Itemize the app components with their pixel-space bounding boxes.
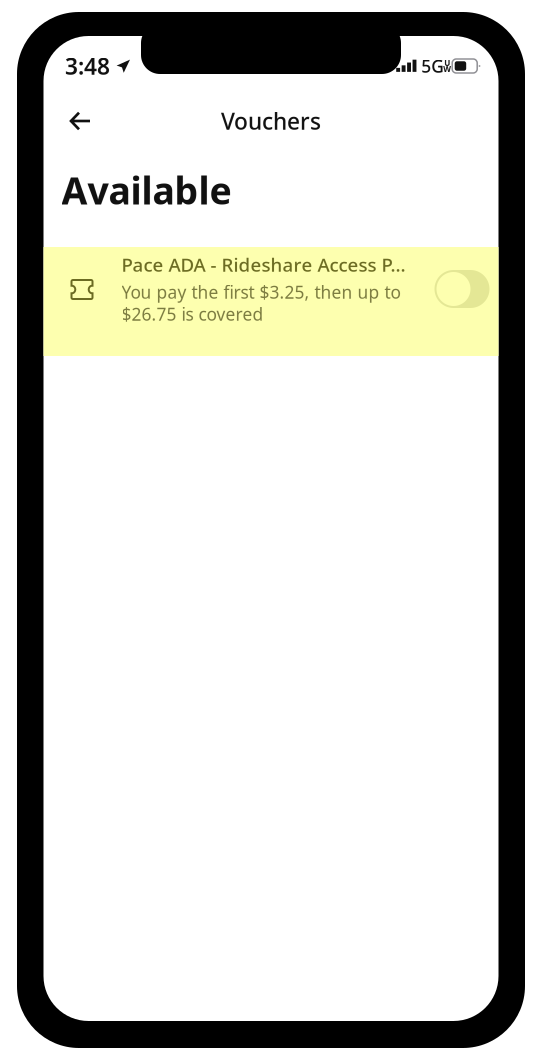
staticText: Pace ADA - Rideshare Access P… bbox=[121, 252, 405, 277]
staticText: 5G bbox=[421, 54, 444, 77]
button[interactable]: Back bbox=[57, 98, 103, 144]
staticText: Vouchers bbox=[221, 106, 321, 136]
staticText: Available bbox=[61, 165, 231, 215]
button[interactable]: Pace ADA - Rideshare Access P… bbox=[43, 247, 498, 356]
staticText: 3:48 bbox=[65, 51, 110, 81]
staticText: $26.75 is covered bbox=[121, 302, 263, 325]
staticText: U bbox=[444, 58, 450, 68]
staticText: W bbox=[443, 64, 451, 74]
staticText: You pay the first $3.25, then up to bbox=[121, 280, 400, 303]
